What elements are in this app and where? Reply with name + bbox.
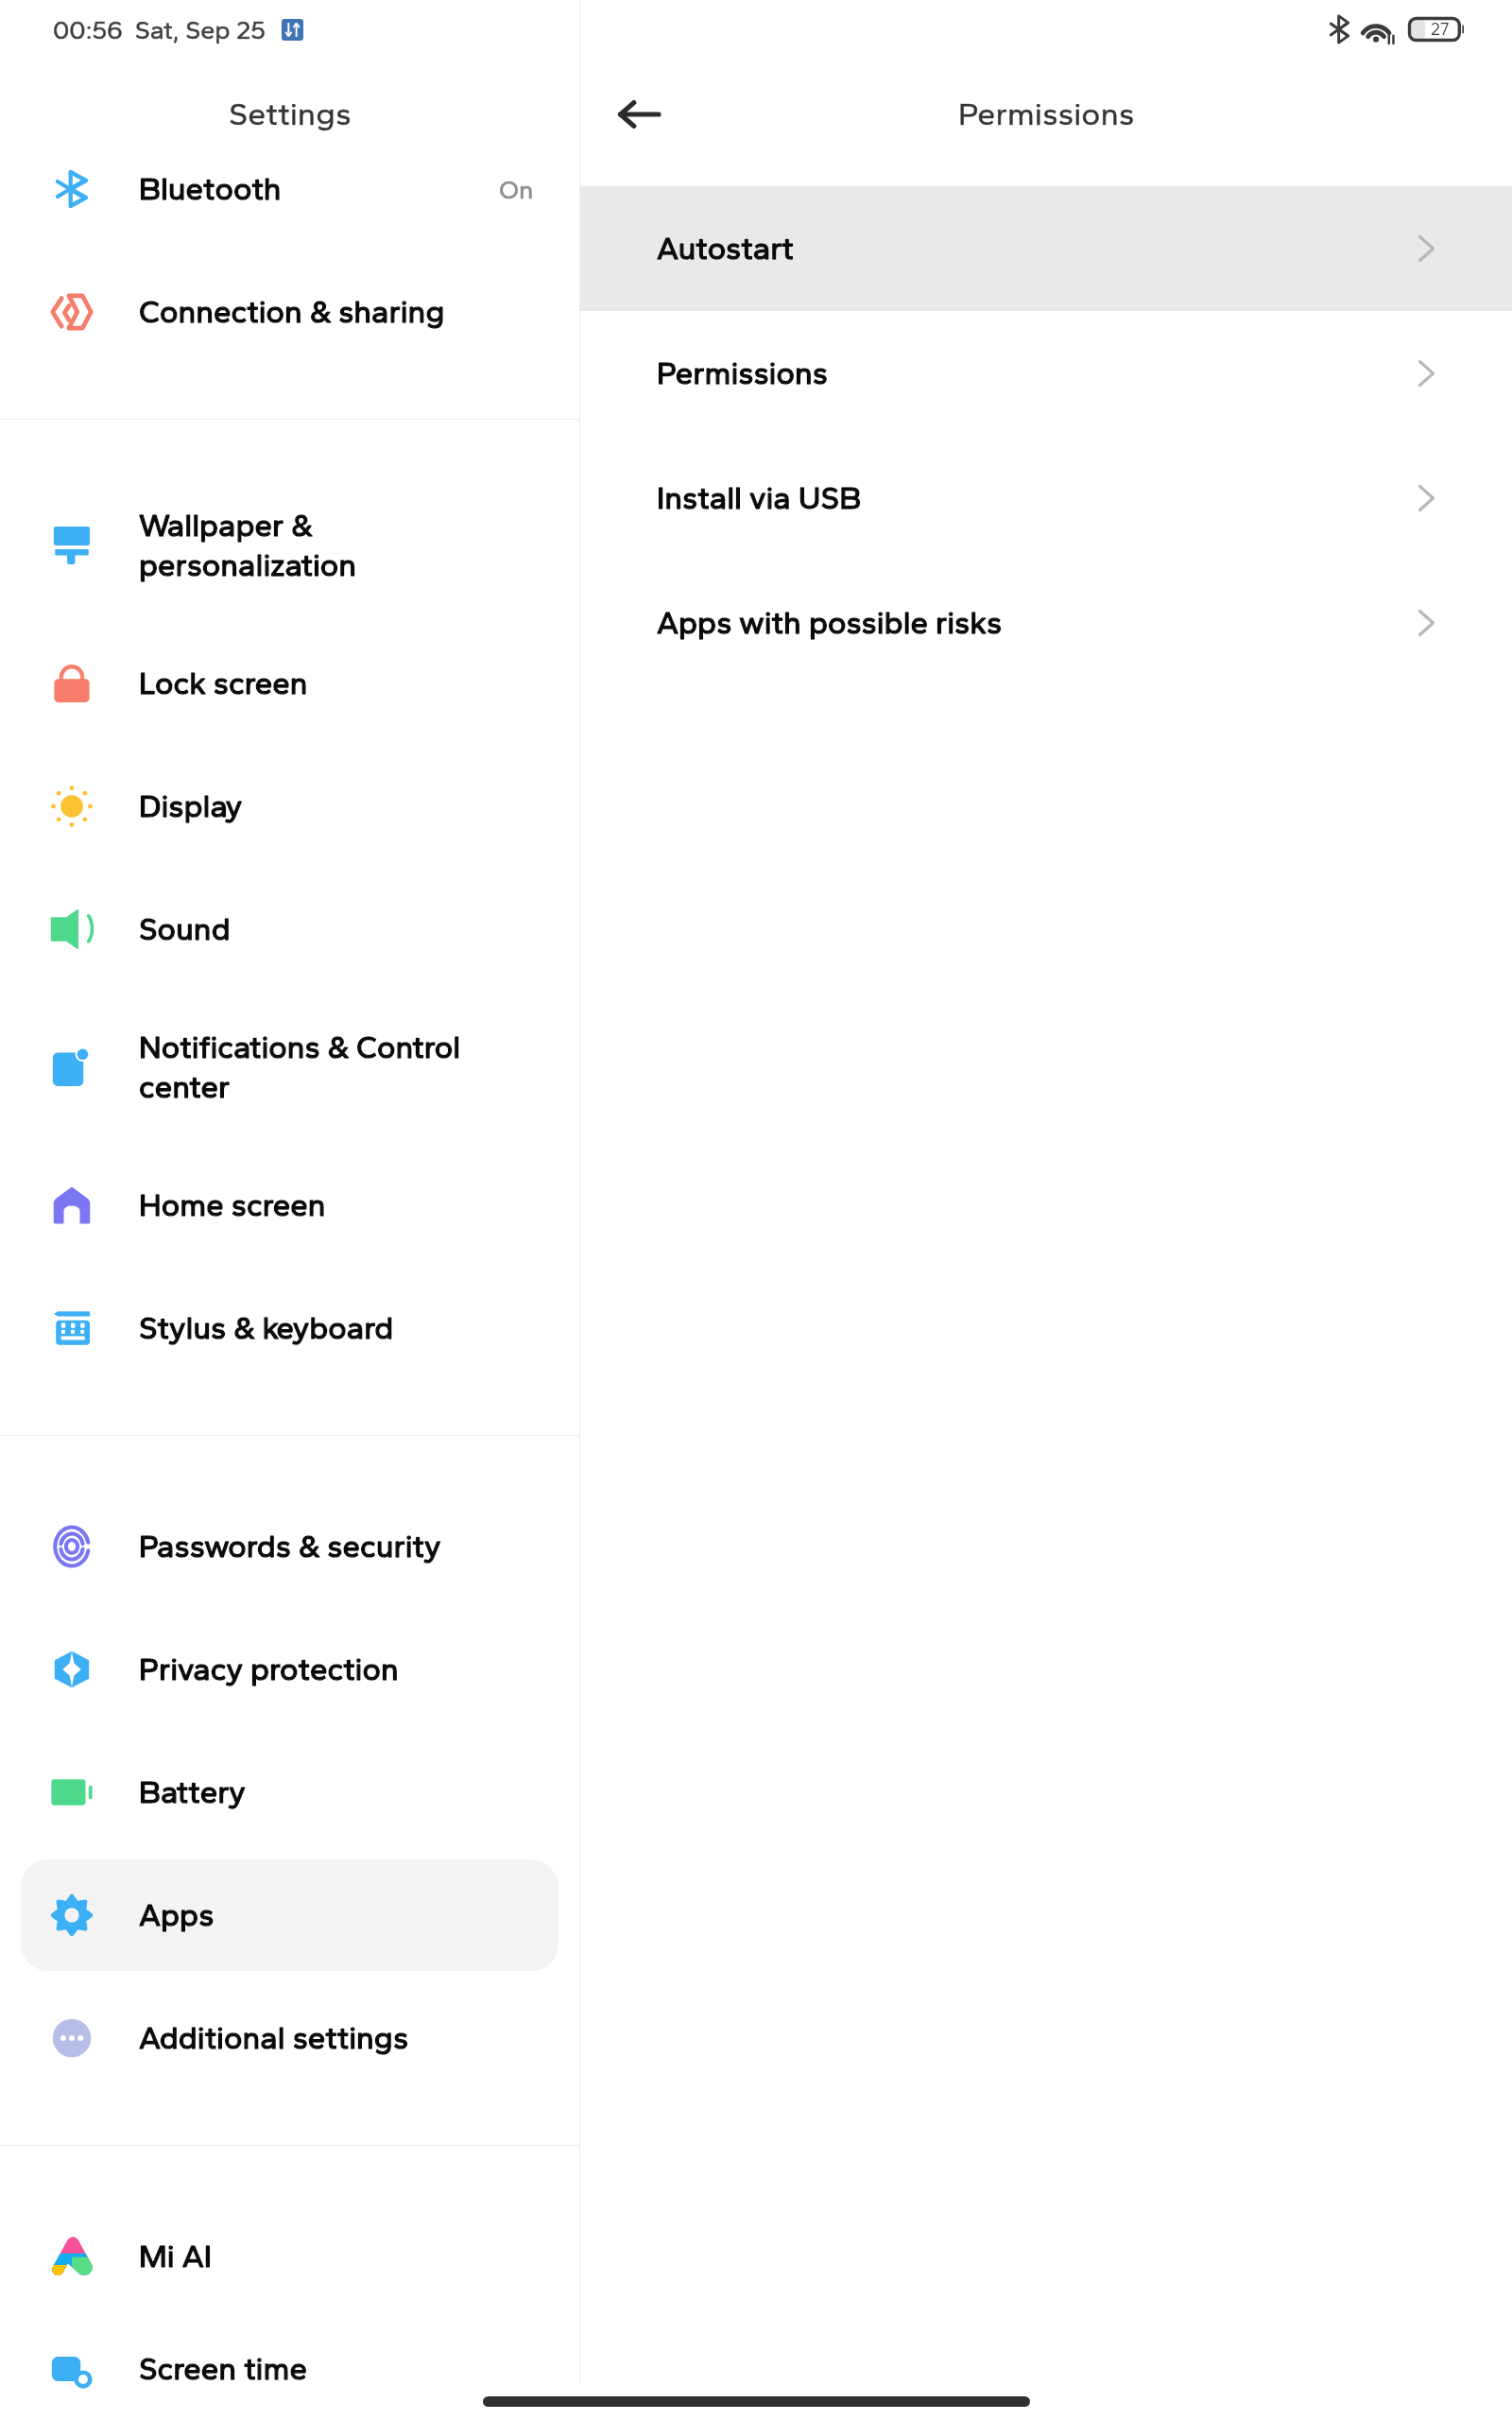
button[interactable]: Privacy protection (21, 1608, 558, 1731)
staticText: Privacy protection (139, 1651, 399, 1688)
staticText: Passwords & security (139, 1528, 441, 1565)
button[interactable]: Battery (21, 1731, 558, 1854)
button[interactable]: Connection & sharing (21, 251, 558, 373)
staticText: Sound (139, 910, 231, 948)
staticText: Permissions (657, 354, 828, 392)
staticText: Permissions (958, 95, 1135, 133)
staticText: Wallpaper & personalization (139, 507, 357, 584)
button[interactable]: Apps (21, 1859, 558, 1971)
staticText: Lock screen (139, 665, 308, 702)
staticText: On (499, 174, 534, 204)
button[interactable]: Wallpaper & personalization (21, 469, 558, 622)
staticText: 00:56 Sat, Sep 25 (53, 14, 266, 44)
staticText: Wallpaper & personalization (139, 507, 357, 584)
staticText: Mi AI (139, 2238, 213, 2275)
staticText: Additional settings (139, 2019, 409, 2057)
button[interactable]: Apps with possible risks (580, 561, 1512, 685)
staticText: Apps (139, 1896, 215, 1934)
staticText: Apps (139, 1896, 215, 1934)
button[interactable]: Additional settings (21, 1977, 558, 2100)
staticText: Autostart (657, 230, 794, 268)
staticText: Passwords & security (139, 1528, 441, 1565)
button[interactable]: Permissions (580, 311, 1512, 436)
staticText: Privacy protection (139, 1651, 399, 1688)
staticText: Additional settings (139, 2019, 409, 2057)
staticText: Connection & sharing (139, 293, 445, 331)
staticText: Bluetooth (139, 170, 282, 208)
staticText: Bluetooth (139, 170, 282, 208)
staticText: Screen time (139, 2350, 307, 2388)
staticText: Settings (229, 95, 352, 133)
staticText: Stylus & keyboard (139, 1309, 394, 1347)
button[interactable]: Autostart (580, 186, 1512, 311)
button[interactable]: Sound (21, 868, 558, 991)
button[interactable]: Lock screen (21, 622, 558, 745)
button[interactable]: Mi AI (21, 2195, 558, 2318)
staticText: Sound (139, 910, 231, 948)
staticText: Stylus & keyboard (139, 1309, 394, 1347)
staticText: Settings (229, 95, 352, 133)
staticText: Permissions (657, 354, 828, 392)
staticText: Notifications & Control center (139, 1028, 461, 1106)
staticText: Autostart (657, 230, 794, 268)
staticText: Install via USB (657, 479, 862, 517)
staticText: Home screen (139, 1186, 326, 1224)
staticText: Permissions (958, 95, 1135, 133)
staticText: Display (139, 787, 243, 825)
button[interactable]: Install via USB (580, 436, 1512, 561)
button[interactable]: Passwords & security (21, 1485, 558, 1608)
staticText: 27 (1431, 19, 1450, 40)
staticText: Screen time (139, 2350, 307, 2388)
staticText: Install via USB (657, 479, 862, 517)
staticText: On (499, 174, 534, 204)
staticText: Connection & sharing (139, 293, 445, 331)
staticText: Battery (139, 1773, 246, 1811)
staticText: Mi AI (139, 2238, 213, 2275)
staticText: Notifications & Control center (139, 1028, 461, 1106)
staticText: Lock screen (139, 665, 308, 702)
button[interactable]: Stylus & keyboard (21, 1267, 558, 1390)
button[interactable]: Display (21, 745, 558, 868)
button[interactable]: Notifications & Control center (21, 991, 558, 1144)
staticText: Apps with possible risks (657, 604, 1003, 642)
button[interactable]: Bluetooth (21, 128, 558, 251)
button[interactable]: Screen time (21, 2318, 558, 2420)
staticText: 00:56 Sat, Sep 25 (53, 14, 266, 44)
staticText: Home screen (139, 1186, 326, 1224)
staticText: Apps with possible risks (657, 604, 1003, 642)
staticText: Battery (139, 1773, 246, 1811)
button[interactable]: Home screen (21, 1144, 558, 1267)
button[interactable]: Back (603, 79, 675, 148)
staticText: Display (139, 787, 243, 825)
